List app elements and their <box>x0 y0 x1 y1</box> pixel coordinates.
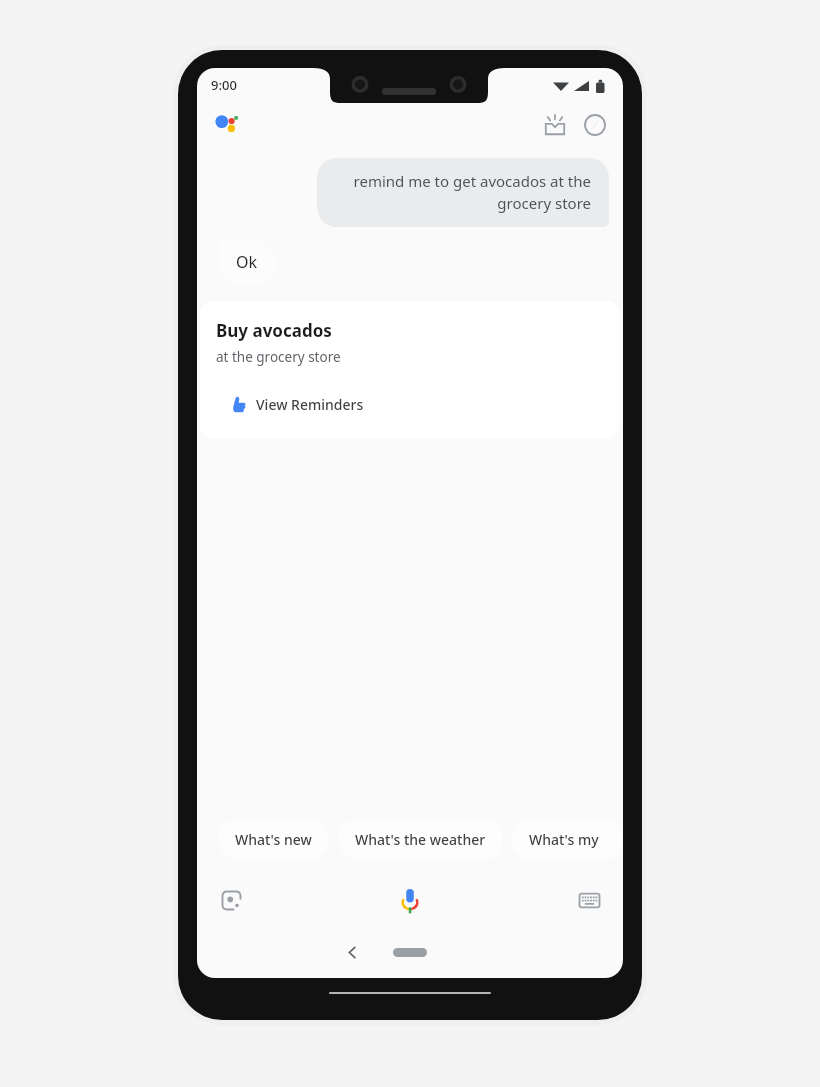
button[interactable]: What's the weather <box>338 819 503 860</box>
button[interactable]: Voice search <box>387 877 433 923</box>
staticText: Buy avocados <box>216 319 332 342</box>
staticText: at the grocery store <box>216 348 341 366</box>
button[interactable]: Explore <box>575 105 615 145</box>
staticText: remind me to get avocados at the grocery… <box>335 171 591 214</box>
button[interactable]: Google Lens <box>211 880 251 920</box>
staticText: What's new <box>235 830 312 849</box>
button[interactable]: What's new <box>218 819 329 860</box>
staticText: View Reminders <box>256 395 364 414</box>
button[interactable]: Ok <box>218 240 276 284</box>
button[interactable]: Home <box>384 940 436 964</box>
staticText: Ok <box>236 251 258 273</box>
staticText: 9:00 <box>211 76 237 94</box>
button[interactable]: Snapshot <box>535 105 575 145</box>
button[interactable]: Buy avocados <box>200 301 620 439</box>
staticText: What's the weather <box>355 830 486 849</box>
button[interactable]: View Reminders <box>216 386 378 423</box>
staticText: What's my wa <box>529 830 606 849</box>
button[interactable]: Back <box>334 934 370 970</box>
button[interactable]: Keyboard <box>569 880 609 920</box>
button[interactable]: What's my wa <box>512 819 623 860</box>
button[interactable]: remind me to get avocados at the grocery… <box>317 158 609 227</box>
button[interactable]: Google Assistant <box>207 105 247 145</box>
